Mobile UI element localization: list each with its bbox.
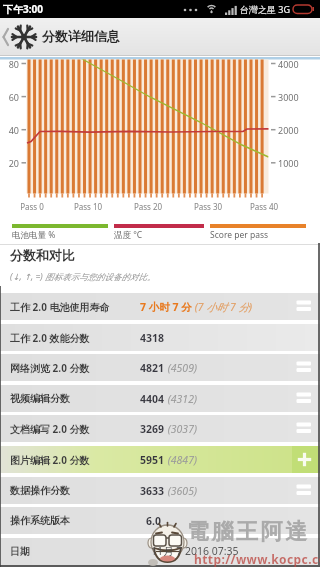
staticText: (3037) [165, 422, 197, 436]
staticText: 4821 [140, 361, 165, 375]
staticText: 数据操作分数 [10, 484, 70, 497]
staticText: 1000 [278, 157, 299, 169]
button[interactable]: 数据操作分数 [0, 477, 320, 504]
staticText: Score per pass [210, 229, 269, 241]
staticText: Pass 20 [130, 201, 166, 212]
staticText: 3269 [140, 422, 165, 436]
staticText: (4509) [165, 361, 197, 375]
staticText: Pass 30 [190, 201, 226, 212]
staticText: 5951 [140, 453, 165, 467]
button[interactable]: 分数详细信息 [0, 18, 320, 56]
staticText: 3633 [140, 484, 165, 498]
staticText: 工作 2.0 电池使用寿命 [10, 300, 110, 314]
staticText: 20 [2, 157, 19, 169]
staticText: 4318 [140, 331, 165, 345]
staticText: 4404 [140, 392, 165, 406]
staticText: (↓, ↑, =) 图标表示与您的设备的对比。 [10, 271, 156, 283]
staticText: 40 [2, 124, 19, 136]
staticText: Pass 40 [246, 201, 282, 212]
staticText: 3000 [278, 91, 299, 103]
staticText: Pass 0 [14, 201, 50, 212]
staticText: 6.0 [146, 514, 161, 528]
staticText: 11月 7 2016 07:35 [151, 544, 239, 558]
staticText: 分数详细信息 [42, 28, 120, 44]
button[interactable]: 图片编辑 2.0 分数 [0, 446, 320, 473]
staticText: 电池电量 % [12, 229, 56, 241]
staticText: Pass 10 [70, 201, 106, 212]
staticText: 80 [2, 58, 19, 70]
staticText: 台灣之星 3G [240, 3, 291, 15]
staticText: 网络浏览 2.0 分数 [10, 361, 90, 375]
staticText: 温度 °C [114, 229, 143, 241]
staticText: 工作 2.0 效能分数 [10, 331, 90, 345]
button[interactable]: 工作 2.0 效能分数 [0, 324, 320, 351]
staticText: (4847) [165, 453, 197, 467]
staticText: 图片编辑 2.0 分数 [10, 453, 90, 467]
staticText: 操作系统版本 [10, 514, 70, 527]
button[interactable]: 文档编写 2.0 分数 [0, 415, 320, 442]
button[interactable]: 工作 2.0 电池使用寿命 [0, 293, 320, 320]
button[interactable]: 日期 [0, 538, 320, 565]
staticText: 日期 [10, 545, 30, 558]
staticText: 4000 [278, 58, 299, 70]
staticText: 视频编辑分数 [10, 392, 70, 405]
button[interactable]: 网络浏览 2.0 分数 [0, 354, 320, 381]
staticText: 60 [2, 91, 19, 103]
staticText: 2000 [278, 124, 299, 136]
staticText: 分数和对比 [10, 247, 75, 263]
staticText: (3605) [165, 484, 197, 498]
staticText: 下午3:00 [3, 2, 43, 16]
staticText: (7 小时 7 分) [192, 300, 253, 314]
staticText: 電腦王阿達 [187, 518, 310, 546]
staticText: 7 小时 7 分 [140, 300, 192, 314]
staticText: 文档编写 2.0 分数 [10, 422, 90, 436]
button[interactable]: 操作系统版本 [0, 507, 320, 534]
staticText: http://www.kocpc.com.tw [194, 551, 320, 567]
button[interactable]: 视频编辑分数 [0, 385, 320, 412]
staticText: (4312) [165, 392, 197, 406]
